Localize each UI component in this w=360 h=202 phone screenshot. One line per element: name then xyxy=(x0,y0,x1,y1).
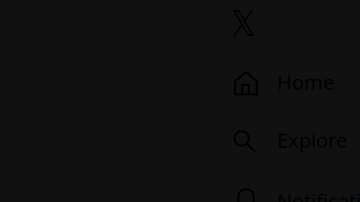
button[interactable]: X xyxy=(233,10,262,44)
button[interactable]: Explore xyxy=(234,122,360,162)
staticText: Home xyxy=(277,69,334,95)
button[interactable]: Home xyxy=(234,64,360,104)
staticText: Notifications xyxy=(277,188,360,202)
staticText: Explore xyxy=(277,127,347,153)
button[interactable]: Notifications xyxy=(234,183,360,202)
